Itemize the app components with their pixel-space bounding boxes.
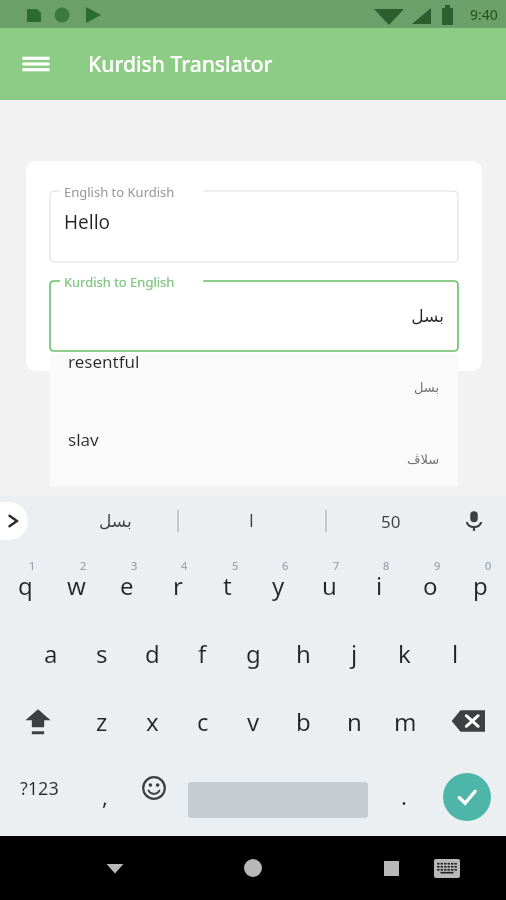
staticText: 1 [29, 558, 36, 573]
button[interactable]: Back [90, 836, 140, 900]
staticText: . [401, 781, 407, 811]
staticText: ?123 [20, 776, 59, 801]
staticText: k [398, 637, 411, 670]
staticText: e [120, 569, 134, 602]
staticText: q [18, 569, 33, 602]
staticText: 6 [282, 558, 289, 573]
staticText: Kurdish to English [64, 273, 175, 291]
button[interactable]: Voice input [454, 501, 494, 541]
button[interactable]: o [405, 554, 456, 616]
staticText: Kurdish Translator [88, 50, 273, 79]
button[interactable]: . [380, 758, 428, 818]
button[interactable]: f [177, 622, 228, 684]
button[interactable]: g [228, 622, 279, 684]
button[interactable]: slav [50, 424, 458, 484]
button[interactable]: c [177, 690, 228, 752]
staticText: i [376, 569, 383, 602]
button[interactable]: بسل [70, 496, 160, 546]
button[interactable]: ?123 [2, 758, 76, 818]
staticText: 7 [333, 558, 340, 573]
staticText: m [394, 705, 417, 738]
button[interactable]: , [80, 758, 130, 818]
staticText: l [452, 637, 459, 670]
staticText: z [96, 705, 108, 738]
button[interactable]: Switch keyboard [422, 836, 472, 900]
staticText: بسل [99, 511, 132, 531]
button[interactable]: Open navigation menu [12, 40, 60, 88]
button[interactable]: Shift [2, 690, 74, 752]
staticText: بسل [411, 306, 444, 326]
button[interactable]: m [380, 690, 431, 752]
staticText: 9 [434, 558, 441, 573]
staticText: d [145, 637, 160, 670]
staticText: s [96, 637, 108, 670]
button[interactable]: t [202, 554, 253, 616]
button[interactable]: Enter [437, 767, 497, 827]
staticText: g [246, 637, 261, 670]
button[interactable]: z [76, 690, 127, 752]
staticText: 0 [485, 558, 492, 573]
staticText: 8 [383, 558, 390, 573]
button[interactable]: Kurdish to English [50, 281, 458, 351]
button[interactable]: n [329, 690, 380, 752]
button[interactable]: x [127, 690, 178, 752]
staticText: Hello [64, 209, 111, 235]
staticText: 5 [232, 558, 239, 573]
staticText: English to Kurdish [64, 183, 175, 201]
staticText: t [223, 569, 232, 602]
staticText: b [296, 705, 311, 738]
staticText: n [347, 705, 362, 738]
button[interactable]: h [278, 622, 329, 684]
button[interactable]: Expand toolbar [0, 502, 28, 540]
button[interactable]: u [304, 554, 355, 616]
staticText: a [44, 637, 58, 670]
button[interactable]: r [152, 554, 203, 616]
button[interactable]: i [354, 554, 405, 616]
staticText: o [423, 569, 438, 602]
staticText: 9:40 [470, 5, 498, 24]
staticText: 2 [80, 558, 87, 573]
staticText: slav [68, 428, 99, 451]
button[interactable]: Emoji [128, 758, 180, 818]
button[interactable]: Backspace [432, 690, 504, 752]
button[interactable]: q [0, 554, 51, 616]
staticText: سلاڤ [407, 452, 440, 467]
button[interactable]: d [127, 622, 178, 684]
staticText: 3 [131, 558, 138, 573]
staticText: resentful [68, 350, 140, 373]
button[interactable]: Recent apps [366, 836, 416, 900]
button[interactable]: Home [226, 841, 280, 895]
button[interactable]: s [76, 622, 127, 684]
staticText: 50 [381, 510, 401, 533]
button[interactable]: w [51, 554, 102, 616]
staticText: y [272, 569, 285, 602]
button[interactable]: resentful [50, 354, 458, 416]
staticText: 4 [181, 558, 188, 573]
button[interactable]: y [253, 554, 304, 616]
button[interactable]: p [455, 554, 506, 616]
staticText: f [198, 637, 207, 670]
staticText: w [67, 569, 86, 602]
staticText: c [197, 705, 209, 738]
staticText: p [473, 569, 488, 602]
staticText: h [296, 637, 311, 670]
button[interactable]: ا [205, 496, 297, 546]
button[interactable]: k [379, 622, 430, 684]
staticText: r [173, 569, 183, 602]
staticText: j [351, 637, 358, 670]
staticText: ا [249, 511, 254, 531]
button[interactable]: a [25, 622, 76, 684]
staticText: بسل [414, 380, 440, 395]
button[interactable]: j [329, 622, 380, 684]
staticText: u [322, 569, 337, 602]
button[interactable]: l [430, 622, 481, 684]
button[interactable]: English to Kurdish [50, 191, 458, 262]
button[interactable]: v [228, 690, 279, 752]
button[interactable]: e [101, 554, 152, 616]
staticText: , [102, 781, 108, 811]
staticText: v [247, 705, 260, 738]
staticText: x [146, 705, 159, 738]
button[interactable]: b [278, 690, 329, 752]
button[interactable]: 50 [345, 496, 437, 546]
